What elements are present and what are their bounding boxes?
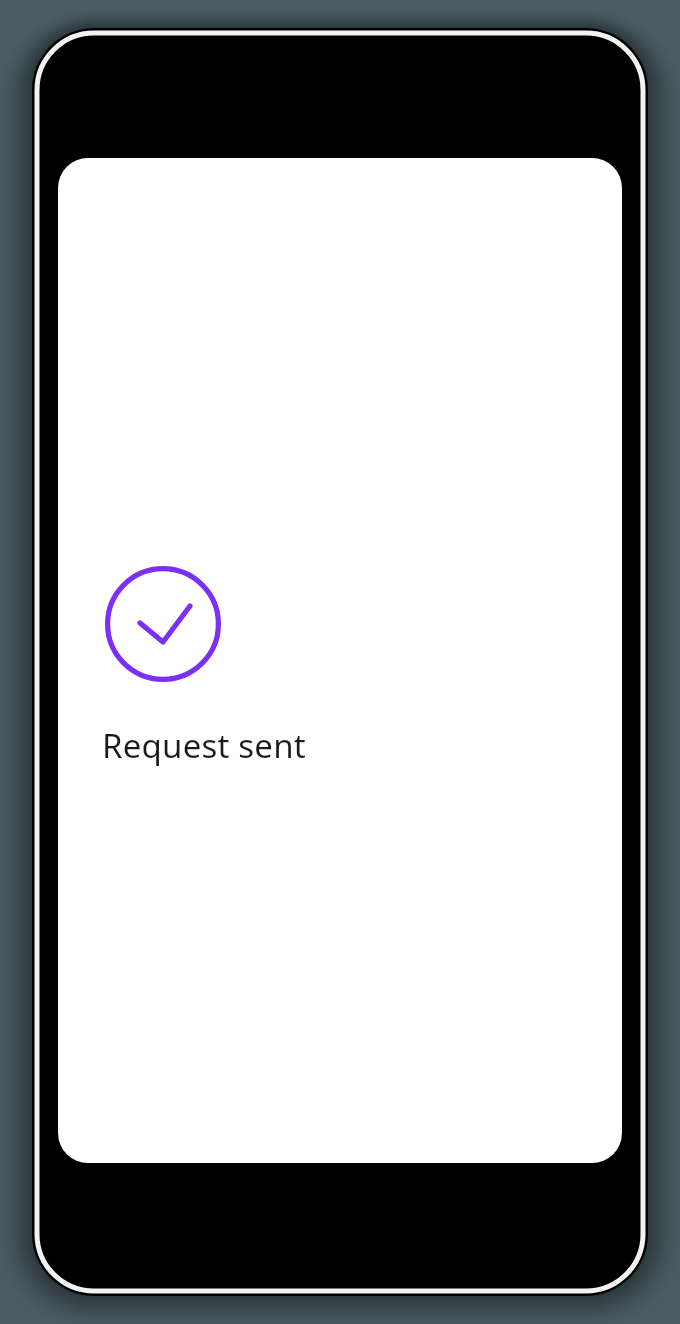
button[interactable]: Request sent confirmation bbox=[102, 563, 224, 685]
button[interactable]: Request sent bbox=[102, 723, 342, 768]
